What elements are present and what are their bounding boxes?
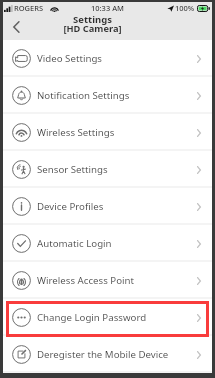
button[interactable]: Video Settings bbox=[3, 40, 212, 77]
button[interactable]: Deregister the Mobile Device bbox=[3, 336, 212, 373]
button[interactable]: Automatic Login bbox=[3, 225, 212, 262]
staticText: Settings bbox=[73, 13, 112, 26]
staticText: Wireless Access Point bbox=[37, 274, 134, 287]
button[interactable]: Sensor Settings bbox=[3, 151, 212, 188]
staticText: Deregister the Mobile Device bbox=[37, 348, 169, 361]
staticText: [HD Camera] bbox=[63, 22, 122, 35]
staticText: ROGERS bbox=[14, 3, 44, 13]
staticText: Change Login Password bbox=[37, 311, 147, 324]
staticText: Sensor Settings bbox=[37, 163, 108, 176]
button[interactable]: Change Login Password bbox=[3, 299, 212, 336]
staticText: 100% bbox=[175, 3, 195, 13]
staticText: 10:33 AM bbox=[91, 3, 124, 13]
staticText: Wireless Settings bbox=[37, 126, 115, 139]
button[interactable]: Back bbox=[3, 14, 29, 40]
staticText: Device Profiles bbox=[37, 200, 104, 213]
staticText: Video Settings bbox=[37, 52, 102, 65]
staticText: Notification Settings bbox=[37, 89, 130, 102]
staticText: Automatic Login bbox=[37, 237, 112, 250]
button[interactable]: Wireless Settings bbox=[3, 114, 212, 151]
button[interactable]: Wireless Access Point bbox=[3, 262, 212, 299]
button[interactable]: Device Profiles bbox=[3, 188, 212, 225]
button[interactable]: Notification Settings bbox=[3, 77, 212, 114]
